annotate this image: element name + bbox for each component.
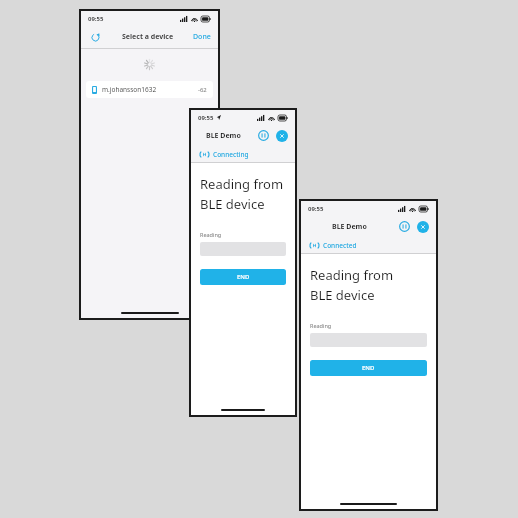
staticText: 09:55	[308, 205, 324, 213]
staticText: Reading from	[310, 266, 394, 284]
button[interactable]: END	[310, 360, 427, 376]
button[interactable]: m.johansson1632	[86, 81, 213, 98]
staticText: Connecting	[213, 150, 249, 159]
staticText: END	[237, 273, 250, 281]
staticText: 09:55	[88, 15, 104, 23]
button[interactable]: END	[200, 269, 286, 285]
staticText: 09:55	[198, 114, 214, 122]
button[interactable]: Pause	[398, 220, 411, 233]
staticText: Reading	[200, 231, 222, 238]
staticText: END	[362, 364, 375, 372]
staticText: Reading	[310, 322, 332, 329]
staticText: m.johansson1632	[102, 85, 157, 94]
staticText: Reading from	[200, 175, 284, 193]
staticText: BLE device	[310, 286, 375, 304]
staticText: Select a device	[122, 32, 174, 42]
button[interactable]: Done	[193, 32, 211, 42]
button[interactable]: Refresh	[88, 30, 102, 44]
staticText: BLE Demo	[332, 222, 367, 232]
button[interactable]: Close	[276, 130, 288, 142]
button[interactable]: Close	[417, 221, 429, 233]
staticText: -62	[198, 86, 207, 94]
staticText: Done	[193, 32, 211, 42]
staticText: BLE Demo	[206, 131, 241, 141]
button[interactable]: Pause	[257, 129, 270, 142]
staticText: BLE device	[200, 195, 265, 213]
staticText: Connected	[323, 241, 357, 250]
